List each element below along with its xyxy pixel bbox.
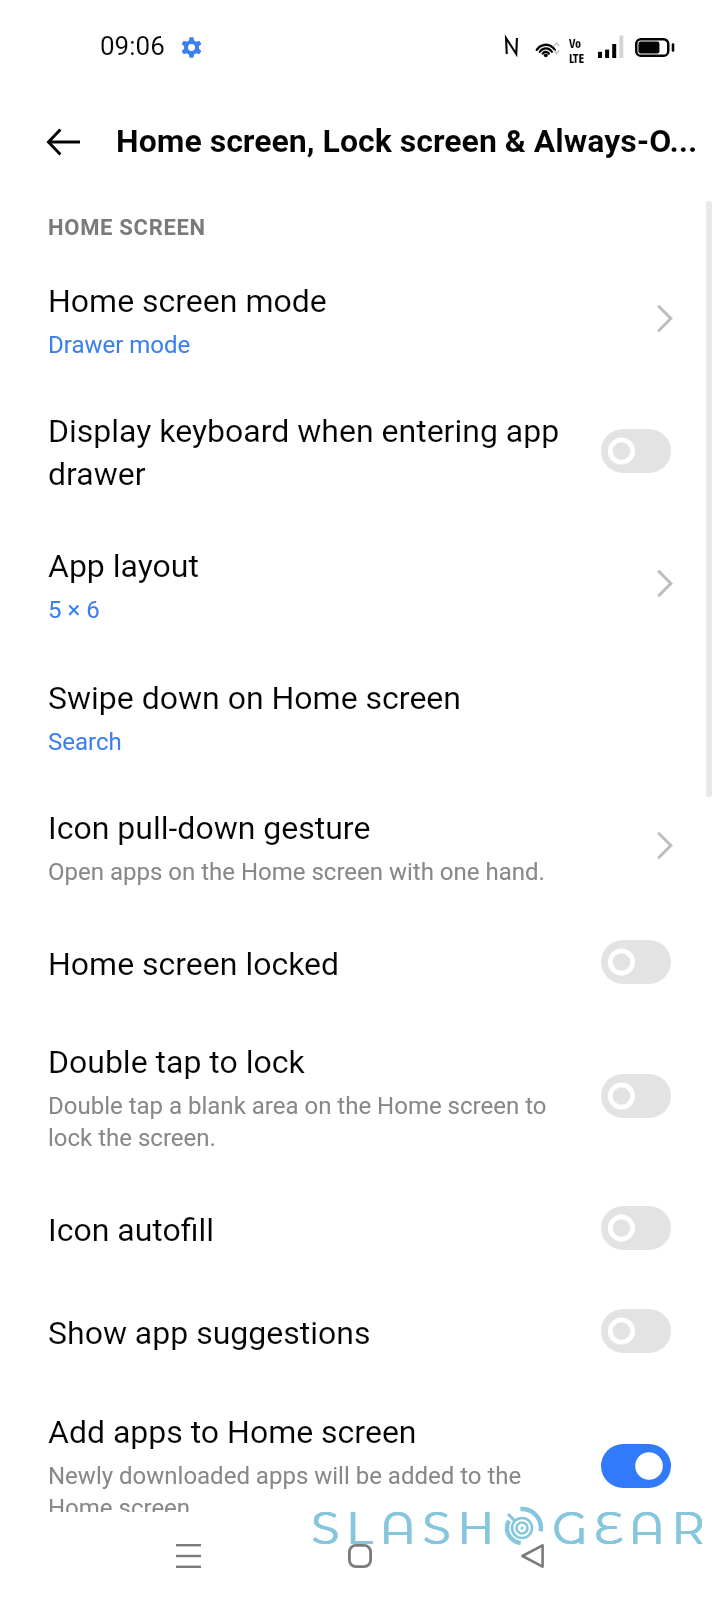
- button[interactable]: Double tap to lock: [0, 1010, 720, 1178]
- staticText: Display keyboard when entering app drawe…: [48, 408, 573, 494]
- button[interactable]: Display keyboard when entering app drawe…: [0, 379, 720, 514]
- button[interactable]: Home: [322, 1518, 398, 1594]
- staticText: Icon autofill: [48, 1207, 215, 1250]
- staticText: Show app suggestions: [48, 1310, 371, 1353]
- staticText: Double tap a blank area on the Home scre…: [48, 1089, 573, 1153]
- staticText: Swipe down on Home screen: [48, 675, 461, 718]
- staticText: Home screen locked: [48, 941, 340, 984]
- staticText: SLASH: [312, 1500, 502, 1555]
- staticText: Newly downloaded apps will be added to t…: [48, 1459, 573, 1512]
- button[interactable]: Swipe down on Home screen: [0, 646, 720, 776]
- button[interactable]: Add apps to Home screen: [0, 1380, 720, 1510]
- staticText: Search: [48, 725, 122, 757]
- staticText: Vo: [569, 36, 582, 51]
- staticText: Home screen, Lock screen & Always-O...: [116, 122, 698, 160]
- button[interactable]: Switch off: [601, 1206, 671, 1250]
- button[interactable]: Switch off: [601, 1074, 671, 1118]
- button[interactable]: Icon pull-down gesture: [0, 776, 720, 912]
- staticText: SLASH: [311, 1500, 501, 1555]
- staticText: GEAR: [553, 1500, 712, 1555]
- button[interactable]: Home screen locked: [0, 912, 720, 1010]
- button[interactable]: Switch off: [601, 429, 671, 473]
- staticText: Drawer mode: [48, 328, 191, 360]
- staticText: App layout: [48, 543, 199, 586]
- staticText: 5 × 6: [48, 593, 100, 625]
- button[interactable]: Home screen mode: [0, 249, 720, 379]
- staticText: Open apps on the Home screen with one ha…: [48, 855, 545, 887]
- button[interactable]: Recents: [150, 1518, 226, 1594]
- staticText: Home screen mode: [48, 278, 327, 321]
- button[interactable]: Icon autofill: [0, 1178, 720, 1281]
- button[interactable]: Switch off: [601, 940, 671, 984]
- button[interactable]: Switch on: [601, 1444, 671, 1488]
- staticText: GEAR: [552, 1500, 711, 1555]
- staticText: Icon pull-down gesture: [48, 805, 371, 848]
- button[interactable]: App layout: [0, 514, 720, 646]
- staticText: Double tap to lock: [48, 1039, 305, 1082]
- staticText: HOME SCREEN: [48, 215, 206, 241]
- button[interactable]: Back: [494, 1518, 570, 1594]
- staticText: 09:06: [100, 31, 165, 61]
- staticText: LTE: [569, 51, 585, 66]
- button[interactable]: Back: [29, 108, 97, 176]
- button[interactable]: Show app suggestions: [0, 1281, 720, 1380]
- button[interactable]: Switch off: [601, 1309, 671, 1353]
- staticText: Add apps to Home screen: [48, 1409, 417, 1452]
